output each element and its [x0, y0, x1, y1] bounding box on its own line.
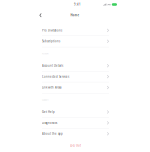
button[interactable]: Diagnostics [42, 118, 109, 128]
staticText: Log Out [70, 144, 81, 147]
staticText: Pro Invitations [42, 29, 62, 32]
button[interactable]: Connected Services [42, 71, 109, 82]
staticText: About the app [42, 132, 63, 135]
staticText: Diagnostics [42, 121, 57, 125]
button[interactable]: Account Details [42, 60, 109, 71]
staticText: 9:41 [74, 3, 81, 6]
staticText: Account Details [42, 64, 63, 67]
button[interactable]: Back [37, 11, 44, 20]
button[interactable]: Link with Alexa [42, 82, 109, 93]
staticText: Home [70, 13, 79, 17]
button[interactable]: Pro Invitations [42, 25, 109, 36]
button[interactable]: Get Help [42, 107, 109, 118]
staticText: Connected Services [42, 75, 69, 78]
staticText: Account [42, 53, 48, 55]
staticText: Link with Alexa [42, 86, 61, 89]
button[interactable]: Subscriptions [42, 36, 109, 47]
button[interactable]: Log Out [42, 139, 109, 151]
staticText: Subscriptions [42, 39, 60, 43]
button[interactable]: About the app [42, 128, 109, 139]
staticText: Get Help [42, 110, 55, 114]
